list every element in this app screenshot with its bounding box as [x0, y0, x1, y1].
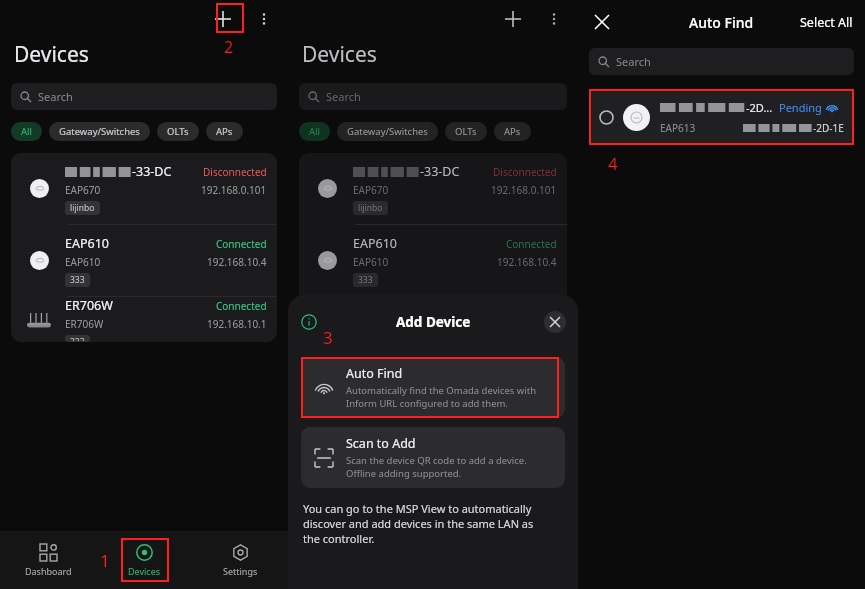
staticText: 333	[358, 274, 373, 286]
button[interactable]: EAP610	[299, 225, 567, 296]
staticText: Disconnected	[493, 453, 557, 467]
staticText: SG2210	[353, 451, 398, 468]
staticText: lijinbo	[70, 202, 95, 214]
staticText: Dashboard	[25, 565, 72, 577]
staticText: ER706W	[65, 297, 113, 314]
staticText: Offline adding supported.	[346, 467, 462, 480]
button[interactable]: Scan to Add	[301, 427, 565, 488]
button[interactable]: -33-DC	[299, 153, 567, 224]
staticText: 4	[608, 152, 618, 175]
staticText: 192.168.0.101	[491, 183, 557, 197]
staticText: Scan the device QR code to add a device.	[346, 454, 527, 467]
staticText: EAP610	[65, 255, 101, 269]
button[interactable]: More options	[542, 7, 566, 31]
button[interactable]: All	[299, 122, 330, 141]
staticText: discover and add devices in the same LAN…	[303, 516, 534, 531]
button[interactable]: OLTs	[445, 122, 487, 141]
staticText: 333	[70, 274, 85, 286]
button[interactable]: Close	[590, 10, 614, 34]
staticText: EAP610	[65, 235, 109, 252]
staticText: APs	[216, 125, 233, 138]
button[interactable]: Search	[299, 83, 567, 110]
staticText: ER8411	[353, 399, 388, 413]
button[interactable]: APs	[206, 122, 243, 141]
staticText: EAP613	[660, 121, 696, 135]
staticText: -2D...	[746, 100, 773, 115]
staticText: test-1	[358, 418, 381, 430]
button[interactable]: OLTs	[157, 122, 199, 141]
button[interactable]: ER706W	[299, 297, 567, 368]
button[interactable]: All	[11, 122, 42, 141]
button[interactable]: More options	[252, 7, 276, 31]
staticText: 192.168.10.1	[497, 327, 557, 341]
staticText: -2D-1E	[813, 121, 844, 135]
staticText: lijinbo	[358, 202, 383, 214]
button[interactable]: Auto Find	[301, 357, 565, 418]
staticText: Automatically find the Omada devices wit…	[346, 384, 537, 397]
staticText: Auto Find	[346, 365, 403, 382]
staticText: TL-SG2210P	[353, 471, 409, 485]
button[interactable]: ER706W	[11, 297, 277, 342]
staticText: Add Device	[396, 313, 471, 331]
button[interactable]: ER8411	[299, 369, 567, 440]
staticText: -33-DC	[132, 163, 172, 180]
staticText: 192.168.10.4	[497, 255, 557, 269]
button[interactable]: -2D...	[589, 89, 854, 145]
button[interactable]: Add	[500, 6, 526, 32]
button[interactable]: Select All	[796, 10, 857, 35]
button[interactable]: Search	[11, 83, 277, 110]
staticText: Search	[616, 54, 651, 69]
staticText: the controller.	[303, 531, 375, 546]
staticText: OLTs	[455, 125, 477, 138]
button[interactable]: Devices	[96, 531, 192, 589]
staticText: You can go to the MSP View to automatica…	[303, 501, 532, 516]
staticText: 192.168.10.4	[207, 255, 267, 269]
staticText: Disconnected	[493, 381, 557, 395]
button[interactable]: EAP610	[11, 225, 277, 296]
staticText: ER706W	[353, 307, 401, 324]
staticText: 192.168.10.1	[207, 317, 267, 331]
staticText: Gateway/Switches	[347, 125, 428, 138]
staticText: All	[309, 125, 320, 138]
staticText: EAP610	[353, 235, 397, 252]
staticText: Connected	[216, 237, 267, 251]
staticText: Connected	[506, 309, 557, 323]
staticText: Scan to Add	[346, 435, 416, 452]
button[interactable]: Add	[210, 6, 236, 32]
staticText: APs	[504, 125, 521, 138]
staticText: 1	[100, 549, 110, 572]
staticText: 192.168.0.101	[201, 183, 267, 197]
staticText: Inform URL configured to add them.	[346, 397, 508, 410]
staticText: Gateway/Switches	[59, 125, 140, 138]
staticText: EAP670	[65, 183, 101, 197]
button[interactable]: Gateway/Switches	[49, 122, 150, 141]
staticText: 3	[323, 326, 333, 349]
button[interactable]: SG2210	[299, 441, 567, 512]
button[interactable]: -33-DC	[11, 153, 277, 224]
button[interactable]: Gateway/Switches	[337, 122, 438, 141]
staticText: 333	[70, 336, 85, 341]
staticText: Disconnected	[203, 165, 267, 179]
staticText: EAP670	[353, 183, 389, 197]
staticText: All	[21, 125, 32, 138]
staticText: Select All	[800, 14, 853, 31]
staticText: 333	[358, 346, 373, 358]
staticText: Connected	[216, 299, 267, 313]
staticText: EAP610	[353, 255, 389, 269]
staticText: -33-DC	[420, 163, 460, 180]
button[interactable]: Close	[544, 311, 566, 333]
button[interactable]: Dashboard	[0, 531, 96, 589]
button[interactable]: APs	[494, 122, 531, 141]
button[interactable]: Info	[300, 313, 318, 331]
button[interactable]: Search	[589, 48, 854, 75]
staticText: Connected	[506, 237, 557, 251]
staticText: Search	[326, 89, 361, 104]
staticText: 192.168.0.1	[503, 399, 557, 413]
button[interactable]: Settings	[192, 531, 288, 589]
staticText: Devices	[302, 40, 377, 69]
staticText: OLTs	[167, 125, 189, 138]
staticText: Settings	[223, 565, 258, 577]
staticText: ER8411	[353, 379, 397, 396]
